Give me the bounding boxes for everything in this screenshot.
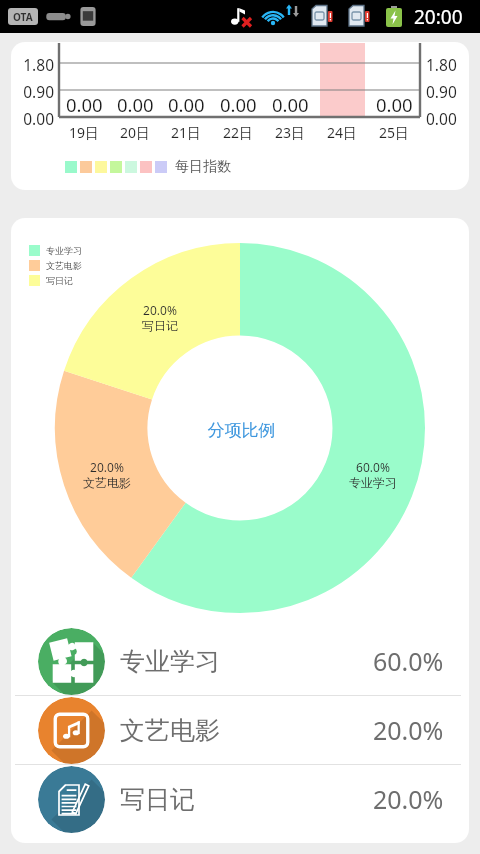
staticText: OTA (13, 10, 33, 24)
staticText: 19日 (69, 123, 100, 142)
staticText: 0.00 (220, 92, 257, 117)
staticText: 0.90 (426, 81, 457, 102)
staticText: 20.0% (373, 782, 444, 816)
staticText: 专业学习 (333, 475, 413, 490)
staticText: 0.00 (18, 108, 54, 129)
staticText: 60.0% (373, 644, 444, 678)
staticText: 22日 (223, 123, 254, 142)
staticText: 20:00 (414, 4, 463, 30)
staticText: 20.0% (120, 302, 200, 318)
button[interactable]: 写日记 (11, 765, 469, 833)
staticText: 文艺电影 (120, 715, 220, 746)
staticText: 文艺电影 (67, 475, 147, 490)
staticText: 专业学习 (120, 646, 220, 677)
staticText: 20日 (120, 123, 151, 142)
staticText: 1.80 (426, 54, 457, 75)
staticText: 1.80 (18, 54, 54, 75)
staticText: 写日记 (46, 275, 73, 286)
staticText: 0.00 (168, 92, 205, 117)
staticText: 0.00 (117, 92, 154, 117)
staticText: 20.0% (373, 713, 444, 747)
button[interactable]: 文艺电影 (11, 696, 469, 764)
staticText: 0.00 (376, 92, 413, 117)
staticText: 分项比例 (201, 420, 282, 441)
staticText: 专业学习 (46, 245, 82, 256)
staticText: 写日记 (120, 784, 195, 815)
staticText: 0.00 (426, 108, 457, 129)
staticText: 文艺电影 (46, 260, 82, 271)
staticText: 每日指数 (175, 158, 231, 176)
button[interactable]: 专业学习 (11, 627, 469, 695)
staticText: 0.90 (18, 81, 54, 102)
staticText: 24日 (327, 123, 358, 142)
staticText: 写日记 (120, 318, 200, 333)
staticText: 20.0% (67, 459, 147, 475)
staticText: 0.00 (66, 92, 103, 117)
staticText: 0.00 (272, 92, 309, 117)
staticText: 23日 (275, 123, 306, 142)
staticText: 21日 (171, 123, 202, 142)
staticText: 60.0% (333, 459, 413, 475)
staticText: 25日 (379, 123, 410, 142)
